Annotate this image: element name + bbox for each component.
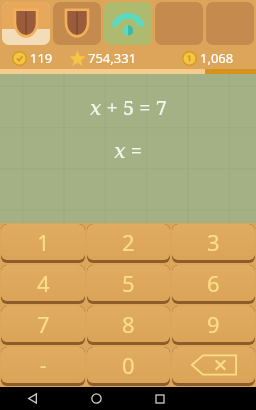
button[interactable]: 6 — [172, 265, 255, 301]
button[interactable]: Empty slot 2 — [206, 2, 254, 45]
button[interactable]: 2 — [87, 224, 170, 260]
button[interactable]: Home — [64, 387, 128, 410]
button[interactable]: Shield item 2 — [53, 2, 101, 45]
staticText: 119 — [30, 49, 53, 67]
staticText: 754,331 — [88, 49, 137, 67]
staticText: 7 — [37, 309, 50, 339]
staticText: 1 — [37, 227, 50, 257]
button[interactable]: 8 — [87, 306, 170, 342]
button[interactable]: Back — [0, 387, 64, 410]
button[interactable]: Empty slot 1 — [155, 2, 203, 45]
staticText: 5 — [122, 268, 135, 298]
staticText: 6 — [207, 268, 220, 298]
button[interactable]: 5 — [87, 265, 170, 301]
staticText: 9 — [207, 309, 220, 339]
button[interactable]: 9 — [172, 306, 255, 342]
button[interactable]: 4 — [1, 265, 85, 301]
button[interactable]: 0 — [87, 347, 170, 383]
staticText: 2 — [122, 227, 135, 257]
button[interactable]: 7 — [1, 306, 85, 342]
staticText: 8 — [122, 309, 135, 339]
staticText: - — [40, 352, 47, 379]
button[interactable]: 1 — [1, 224, 85, 260]
staticText: 4 — [37, 268, 50, 298]
staticText: 1,068 — [200, 49, 234, 67]
staticText: 𝑥 + 5 = 7 — [90, 94, 167, 121]
staticText: 3 — [207, 227, 220, 257]
button[interactable]: Recent apps — [128, 387, 192, 410]
button[interactable]: Power up — [104, 2, 152, 45]
staticText: 𝑥 = — [114, 137, 142, 164]
button[interactable]: Minus — [1, 347, 85, 383]
button[interactable]: Backspace — [172, 347, 255, 383]
staticText: 0 — [122, 350, 135, 380]
button[interactable]: Shield item 1 — [2, 2, 50, 45]
button[interactable]: 3 — [172, 224, 255, 260]
